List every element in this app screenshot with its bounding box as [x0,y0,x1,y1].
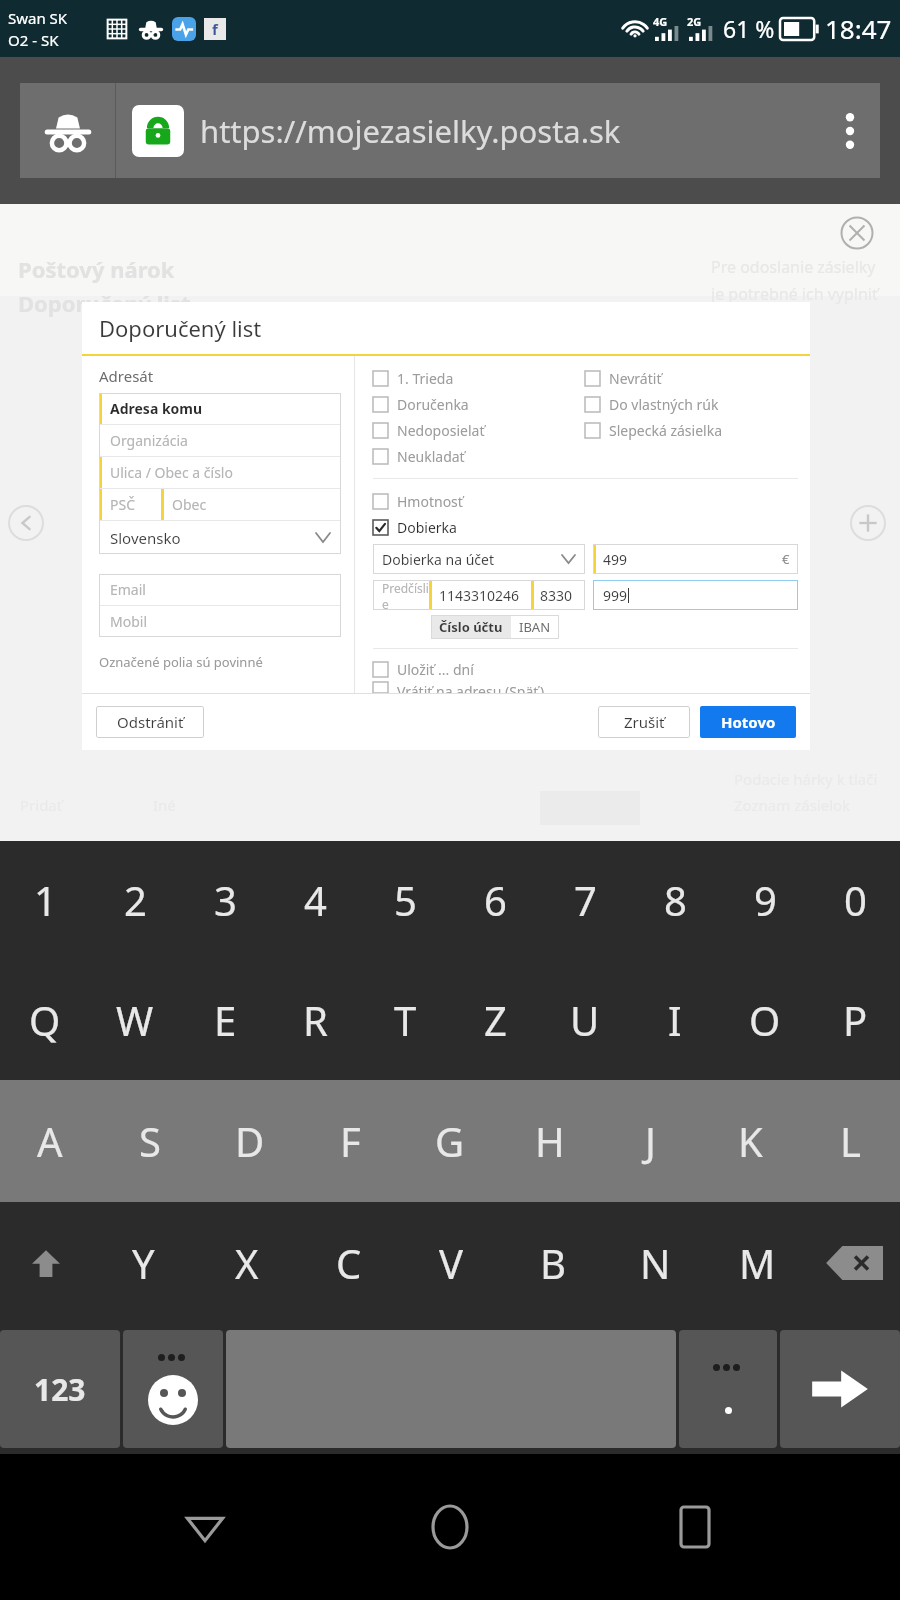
button[interactable]: N [604,1202,706,1324]
button[interactable]: Enter [780,1330,900,1448]
button[interactable]: Dobierka na účet [373,544,585,574]
button[interactable]: Adresa komu [99,393,341,424]
staticText: 3 [214,873,237,927]
button[interactable]: Neukladať [373,443,465,469]
button[interactable]: 8330 [531,580,585,610]
staticText: 1143310246 [439,586,520,605]
button[interactable]: 999 [593,580,798,610]
button[interactable]: W [90,959,180,1080]
button[interactable]: 0 [810,841,900,959]
button[interactable]: Organizácia [99,425,341,456]
staticText: Slovensko [110,528,181,548]
button[interactable]: M [706,1202,808,1324]
button[interactable]: Mobil [99,606,341,637]
button[interactable]: Vrátiť na adresu (Späť) [373,682,545,693]
button[interactable]: 1 [0,841,90,959]
button[interactable]: Ulica / Obec a číslo [99,457,341,488]
button[interactable]: Y [92,1202,195,1324]
button[interactable]: B [502,1202,604,1324]
button[interactable]: G [400,1080,500,1202]
staticText: 9 [754,873,777,927]
button[interactable]: Emoji [123,1330,223,1448]
button[interactable]: Home [410,1487,490,1567]
button[interactable]: Hmotnosť [373,488,463,514]
staticText: Y [132,1236,155,1290]
button[interactable]: Hotovo [700,706,796,738]
button[interactable]: D [200,1080,300,1202]
button[interactable]: Previous [8,505,44,541]
button[interactable]: 9 [720,841,810,959]
button[interactable]: Doručenka [373,391,469,417]
button[interactable]: Period [679,1330,777,1448]
button[interactable]: Odstrániť [96,706,204,738]
staticText: 2 [124,873,147,927]
button[interactable]: Zrušiť [598,706,690,738]
button[interactable]: Uložiť ... dní [373,656,474,682]
button[interactable]: 499 [593,544,798,574]
button[interactable]: IBAN [511,615,559,639]
staticText: N [640,1236,671,1290]
button[interactable]: P [810,959,900,1080]
button[interactable]: U [540,959,630,1080]
button[interactable]: 1. Trieda [373,365,454,391]
button[interactable]: X [195,1202,298,1324]
button[interactable]: Q [0,959,90,1080]
staticText: Neukladať [397,447,465,466]
button[interactable]: Back [165,1487,245,1567]
button[interactable]: H [500,1080,600,1202]
button[interactable]: Nevrátiť [585,365,662,391]
button[interactable]: F [300,1080,400,1202]
button[interactable]: Shift [0,1202,92,1324]
button[interactable]: Incognito mode [20,83,115,178]
button[interactable]: J [600,1080,700,1202]
button[interactable]: Číslo účtu [431,615,511,639]
button[interactable]: Backspace [808,1202,900,1324]
staticText: 1 [34,873,57,927]
button[interactable]: Slepecká zásielka [585,417,722,443]
button[interactable]: Dobierka [373,514,457,540]
button[interactable]: PSČ [99,489,161,520]
button[interactable]: Email [99,574,341,605]
button[interactable]: Recents [655,1487,735,1567]
button[interactable]: S [100,1080,200,1202]
button[interactable]: 3 [180,841,270,959]
button[interactable]: More options [820,83,880,178]
staticText: f [212,19,218,39]
button[interactable]: 8 [630,841,720,959]
button[interactable]: Obec [161,489,341,520]
button[interactable]: O [720,959,810,1080]
button[interactable]: Slovensko [99,521,341,554]
button[interactable]: A [0,1080,100,1202]
button[interactable]: Add [850,505,886,541]
button[interactable]: Do vlastných rúk [585,391,719,417]
button[interactable]: I [630,959,720,1080]
button[interactable]: V [400,1202,502,1324]
button[interactable]: Numbers [0,1330,120,1448]
staticText: Predčíslie [382,580,429,610]
button[interactable]: 1143310246 [429,580,531,610]
button[interactable]: Predčíslie [373,580,429,610]
staticText: P [843,993,868,1047]
button[interactable]: 4 [270,841,360,959]
button[interactable]: 6 [450,841,540,959]
button[interactable]: 7 [540,841,630,959]
staticText: Odstrániť [117,712,184,732]
button[interactable]: 5 [360,841,450,959]
staticText: 5 [394,873,417,927]
button[interactable]: C [298,1202,400,1324]
button[interactable]: Close [840,216,874,250]
button[interactable]: Z [450,959,540,1080]
staticText: Označené polia sú povinné [99,653,263,671]
button[interactable]: E [180,959,270,1080]
staticText: Doručenka [397,395,469,414]
button[interactable]: L [800,1080,900,1202]
button[interactable]: 2 [90,841,180,959]
button[interactable]: K [700,1080,800,1202]
button[interactable]: Nedoposielať [373,417,485,443]
button[interactable]: R [270,959,360,1080]
staticText: G [435,1114,465,1168]
button[interactable]: T [360,959,450,1080]
